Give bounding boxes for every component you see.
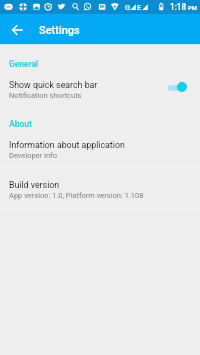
staticText: General <box>9 59 39 69</box>
staticText: App version: 1.0, Platform version: 1.10… <box>9 191 144 200</box>
staticText: E <box>137 3 142 12</box>
staticText: Developer info <box>9 151 57 160</box>
button[interactable]: Information about application <box>0 134 200 166</box>
staticText: G <box>125 3 131 12</box>
staticText: Notification shortcuts <box>9 91 82 100</box>
button[interactable]: Build version <box>0 174 200 206</box>
staticText: Information about application <box>9 140 125 150</box>
button[interactable]: Show quick search bar <box>0 74 200 106</box>
staticText: About <box>9 119 32 129</box>
staticText: 1:18 <box>170 2 187 12</box>
button[interactable]: Back <box>2 14 32 44</box>
staticText: Show quick search bar <box>9 80 98 90</box>
staticText: PM <box>188 5 197 12</box>
staticText: Settings <box>39 24 80 37</box>
staticText: Build version <box>9 180 60 190</box>
button[interactable]: Show quick search bar <box>168 81 188 93</box>
